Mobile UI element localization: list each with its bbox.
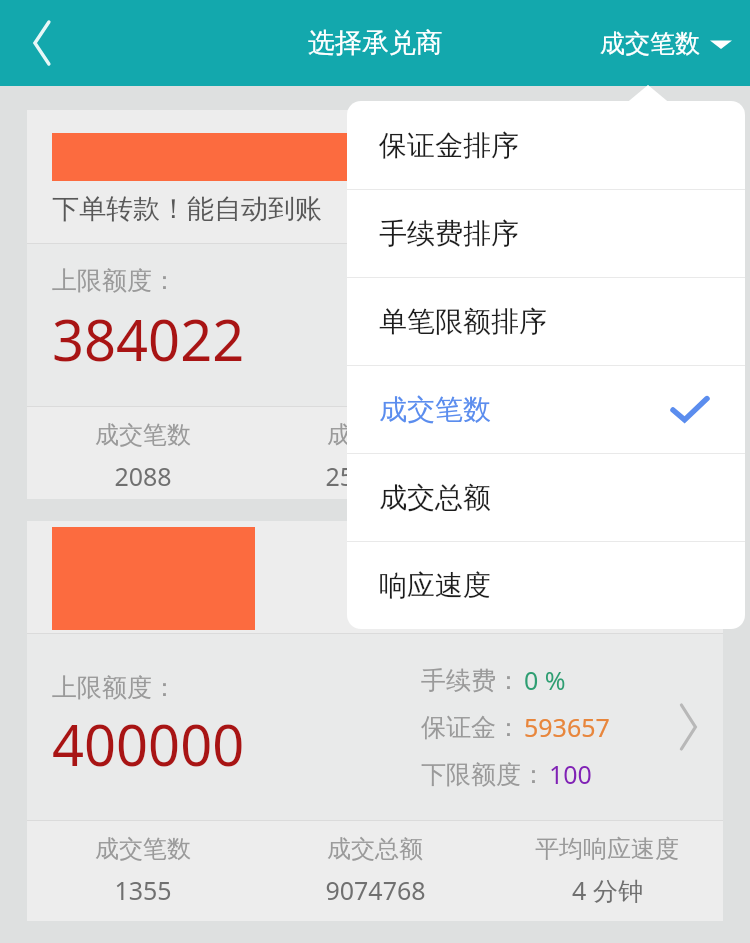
staticText: 4 分钟: [572, 873, 643, 907]
staticText: 手续费：: [421, 665, 521, 696]
button[interactable]: 成交笔数: [347, 366, 745, 453]
staticText: 1355: [114, 873, 172, 907]
staticText: 成交总额: [327, 420, 423, 450]
staticText: 保证金：: [421, 712, 521, 743]
button[interactable]: 上限额度：: [27, 634, 723, 820]
button[interactable]: 成交总额: [347, 454, 745, 541]
button[interactable]: Back: [10, 14, 68, 72]
staticText: 400000: [52, 706, 245, 782]
button[interactable]: 响应速度: [347, 542, 745, 629]
staticText: 上限额度：: [52, 265, 177, 296]
staticText: 2088: [114, 459, 172, 493]
button[interactable]: 手续费排序: [347, 190, 745, 277]
staticText: 保证金排序: [379, 128, 519, 163]
staticText: 下单转款！能自动到账: [52, 192, 322, 226]
button[interactable]: 成交笔数: [596, 18, 736, 69]
staticText: 0 %: [524, 663, 566, 697]
button[interactable]: 保证金排序: [347, 101, 745, 189]
staticText: 上限额度：: [52, 672, 177, 703]
staticText: 平均响应速度: [535, 834, 679, 864]
staticText: 100: [549, 757, 592, 791]
staticText: 9074768: [325, 873, 426, 907]
staticText: 成交笔数: [95, 420, 191, 450]
staticText: 成交笔数: [379, 392, 491, 427]
staticText: 单笔限额排序: [379, 304, 547, 339]
staticText: 成交笔数: [600, 28, 700, 59]
staticText: 选择承兑商: [308, 26, 443, 60]
staticText: 手续费排序: [379, 216, 519, 251]
staticText: 成交总额: [379, 480, 491, 515]
staticText: 2512345: [325, 459, 426, 493]
staticText: 384022: [52, 301, 245, 377]
staticText: 593657: [524, 710, 610, 744]
button[interactable]: 单笔限额排序: [347, 278, 745, 365]
staticText: 响应速度: [379, 568, 491, 603]
staticText: 成交总额: [327, 834, 423, 864]
staticText: 成交笔数: [95, 834, 191, 864]
staticText: 下限额度：: [421, 759, 546, 790]
